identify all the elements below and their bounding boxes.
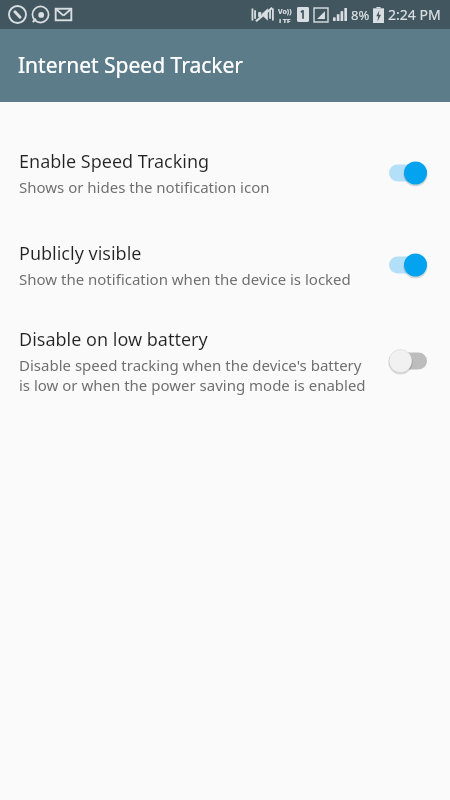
button[interactable]: On <box>382 248 434 282</box>
staticText: 2:24 PM <box>388 5 441 24</box>
staticText: Show the notification when the device is… <box>19 269 351 289</box>
button[interactable]: Off <box>382 344 434 378</box>
staticText: Disable on low battery <box>19 327 208 352</box>
staticText: LTE <box>279 17 291 23</box>
button[interactable]: Publicly visible <box>0 241 450 289</box>
button[interactable]: On <box>382 156 434 190</box>
staticText: Shows or hides the notification icon <box>19 177 270 197</box>
staticText: Internet Speed Tracker <box>18 51 244 80</box>
staticText: 8% <box>351 6 370 24</box>
button[interactable]: Enable Speed Tracking <box>0 149 450 197</box>
staticText: Vo)) <box>278 7 292 17</box>
button[interactable]: Disable on low battery <box>0 327 450 395</box>
staticText: Publicly visible <box>19 241 142 266</box>
staticText: Enable Speed Tracking <box>19 149 210 174</box>
staticText: Disable speed tracking when the device's… <box>19 355 368 395</box>
